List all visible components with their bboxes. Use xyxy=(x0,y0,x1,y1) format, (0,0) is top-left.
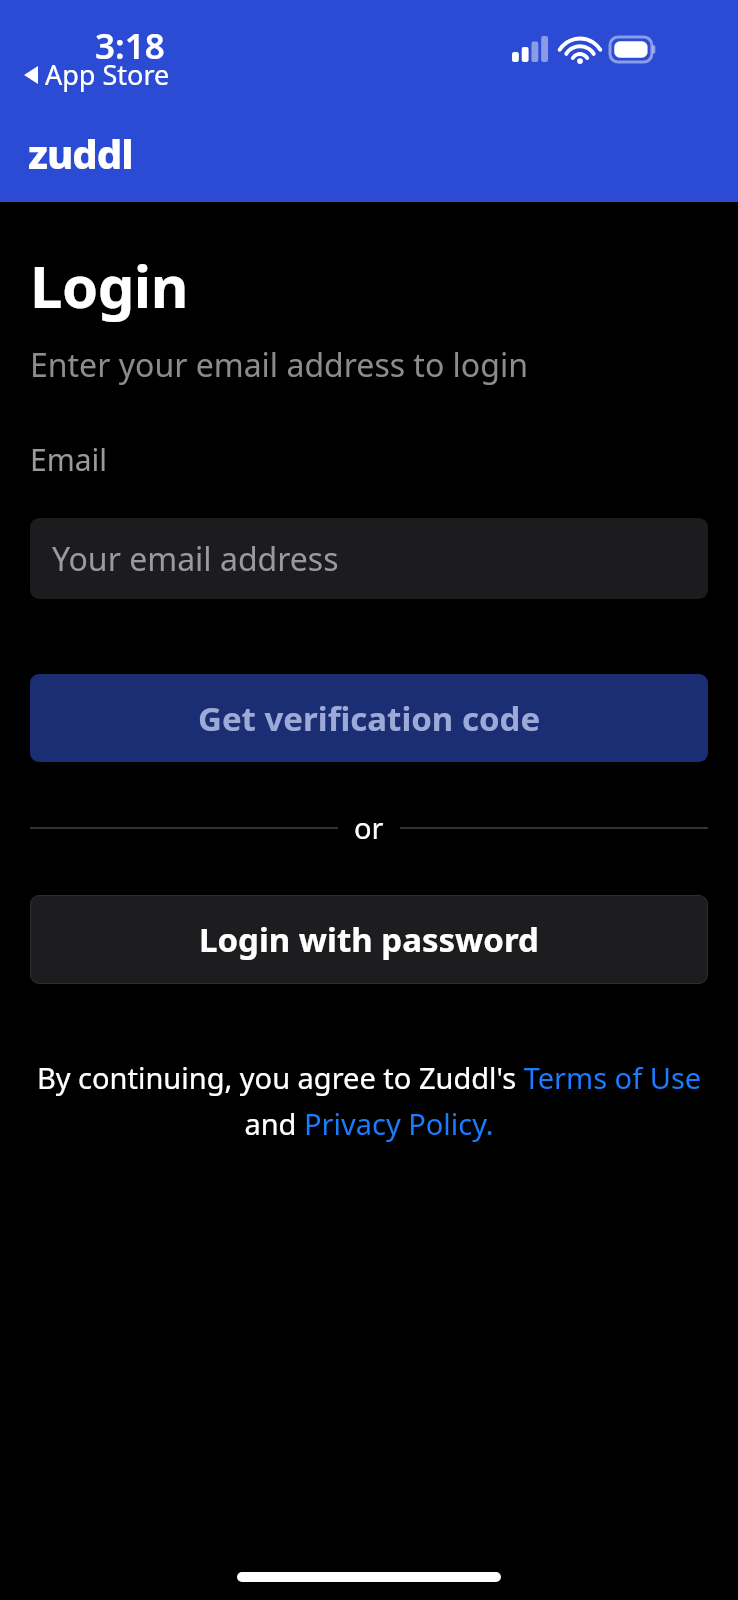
staticText: Login with password xyxy=(199,917,539,962)
button[interactable]: App Store xyxy=(22,54,172,95)
staticText: By continuing, you agree to Zuddl's Term… xyxy=(30,1058,708,1144)
staticText: 3:18 xyxy=(95,22,165,70)
staticText: Login xyxy=(30,246,188,325)
button[interactable]: Login with password xyxy=(30,895,708,984)
button[interactable]: zuddl xyxy=(28,126,133,180)
button[interactable]: Get verification code xyxy=(30,674,708,762)
staticText: App Store xyxy=(45,56,170,93)
staticText: Your email address xyxy=(52,537,339,581)
staticText: Enter your email address to login xyxy=(30,343,528,387)
button[interactable]: Your email address xyxy=(30,518,708,599)
staticText: or xyxy=(354,808,384,847)
staticText: Get verification code xyxy=(198,696,541,741)
staticText: Email xyxy=(30,439,108,480)
staticText: zuddl xyxy=(28,126,133,180)
button[interactable]: By continuing, you agree to Zuddl's Term… xyxy=(30,1058,708,1144)
